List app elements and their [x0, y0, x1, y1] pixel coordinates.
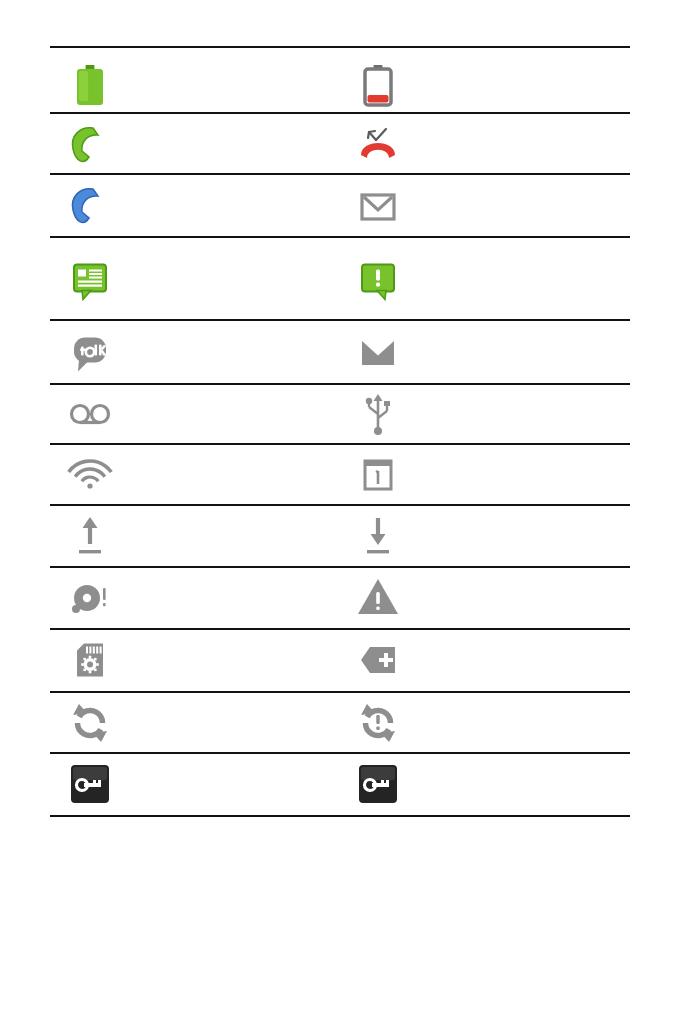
button[interactable]: Sync: [62, 695, 118, 751]
button[interactable]: Google Talk: [62, 325, 118, 381]
button[interactable]: Call on hold: [62, 179, 118, 235]
button[interactable]: Calendar event: [350, 447, 406, 503]
button[interactable]: Download: [350, 508, 406, 564]
button[interactable]: Missed call: [350, 118, 406, 174]
button[interactable]: Upload: [62, 508, 118, 564]
button[interactable]: VPN connected: [62, 756, 118, 812]
button[interactable]: USB connected: [350, 386, 406, 442]
button[interactable]: Battery low: [350, 57, 406, 113]
button[interactable]: VPN: [350, 756, 406, 812]
button[interactable]: SD card: [62, 632, 118, 688]
button[interactable]: SMS message: [62, 252, 118, 308]
button[interactable]: Warning: [350, 570, 406, 626]
button[interactable]: Battery full: [62, 57, 118, 113]
button[interactable]: Gmail: [350, 179, 406, 235]
button[interactable]: Sync problem: [350, 695, 406, 751]
button[interactable]: Voicemail: [62, 386, 118, 442]
button[interactable]: Disk space low: [62, 570, 118, 626]
button[interactable]: Email: [350, 325, 406, 381]
button[interactable]: Message problem: [350, 252, 406, 308]
button[interactable]: Call in progress: [62, 118, 118, 174]
button[interactable]: Wi-Fi available: [62, 447, 118, 503]
button[interactable]: More notifications: [350, 632, 406, 688]
